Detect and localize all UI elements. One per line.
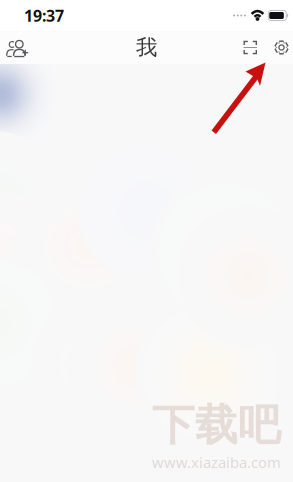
staticText: 我 — [136, 34, 157, 61]
staticText: 下载吧 — [152, 399, 281, 451]
button[interactable]: Scan — [235, 32, 265, 63]
staticText: www.xiazaiba.com — [152, 452, 281, 472]
staticText: 19:37 — [24, 5, 64, 26]
button[interactable]: Settings — [265, 32, 293, 63]
button[interactable]: Add friends — [0, 31, 37, 63]
